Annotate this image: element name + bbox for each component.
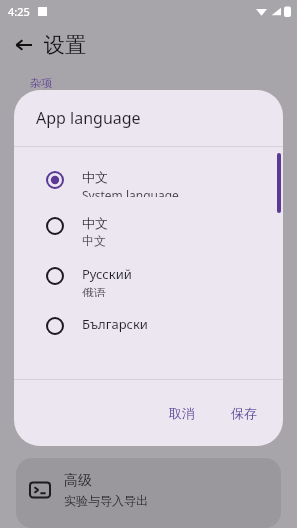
- button[interactable]: Русский: [14, 265, 283, 297]
- button[interactable]: Български: [14, 315, 283, 341]
- staticText: 中文: [82, 169, 108, 185]
- button[interactable]: 高级: [16, 458, 281, 528]
- staticText: 中文: [82, 215, 108, 231]
- staticText: 俄语: [82, 285, 106, 297]
- button[interactable]: 取消: [157, 397, 207, 429]
- button[interactable]: 中文: [14, 215, 283, 247]
- staticText: Български: [82, 315, 148, 333]
- staticText: Русский: [82, 265, 132, 283]
- staticText: 高级: [64, 472, 92, 490]
- staticText: 中文: [82, 233, 106, 247]
- button[interactable]: 保存: [219, 397, 269, 429]
- staticText: System language: [82, 187, 179, 197]
- staticText: 保存: [231, 405, 257, 421]
- button[interactable]: 中文: [14, 169, 283, 197]
- staticText: 实验与导入导出: [64, 493, 148, 508]
- staticText: App language: [36, 107, 141, 129]
- button[interactable]: Back: [8, 29, 40, 61]
- staticText: 设置: [44, 32, 86, 58]
- staticText: 4:25: [8, 4, 30, 19]
- staticText: 杂项: [30, 76, 52, 90]
- staticText: 取消: [169, 405, 195, 421]
